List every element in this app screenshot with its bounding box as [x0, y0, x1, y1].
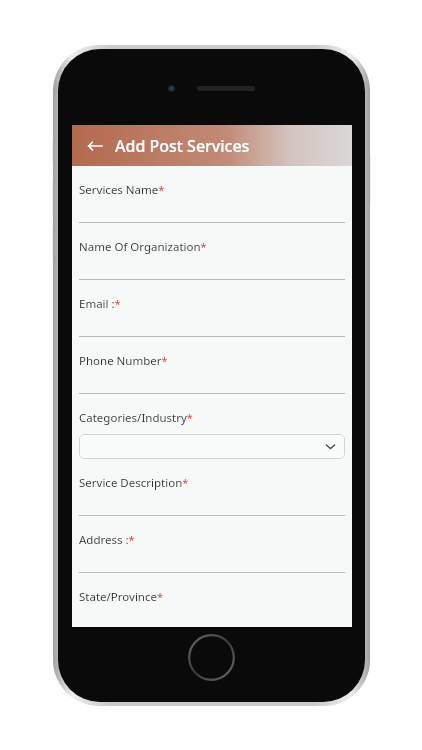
staticText: Phone Number* [79, 353, 168, 369]
other: Select category [79, 434, 345, 459]
staticText: Service Description* [79, 475, 189, 491]
button[interactable]: Service Description* [79, 469, 345, 526]
staticText: Services Name* [79, 182, 165, 198]
staticText: Address :* [79, 532, 135, 548]
button[interactable]: Email :* [79, 290, 345, 347]
staticText: Categories/Industry* [79, 410, 193, 426]
button[interactable]: State/Province* [79, 583, 345, 627]
staticText: Email :* [79, 296, 121, 312]
staticText: Add Post Services [115, 135, 250, 157]
staticText: State/Province* [79, 589, 164, 605]
staticText: Name Of Organization* [79, 239, 207, 255]
button[interactable]: Phone Number* [79, 347, 345, 404]
button[interactable]: Services Name* [79, 176, 345, 233]
button[interactable]: Categories/Industry* [79, 404, 345, 469]
button[interactable]: Address :* [79, 526, 345, 583]
button[interactable]: Back [82, 133, 108, 159]
button[interactable]: Name Of Organization* [79, 233, 345, 290]
